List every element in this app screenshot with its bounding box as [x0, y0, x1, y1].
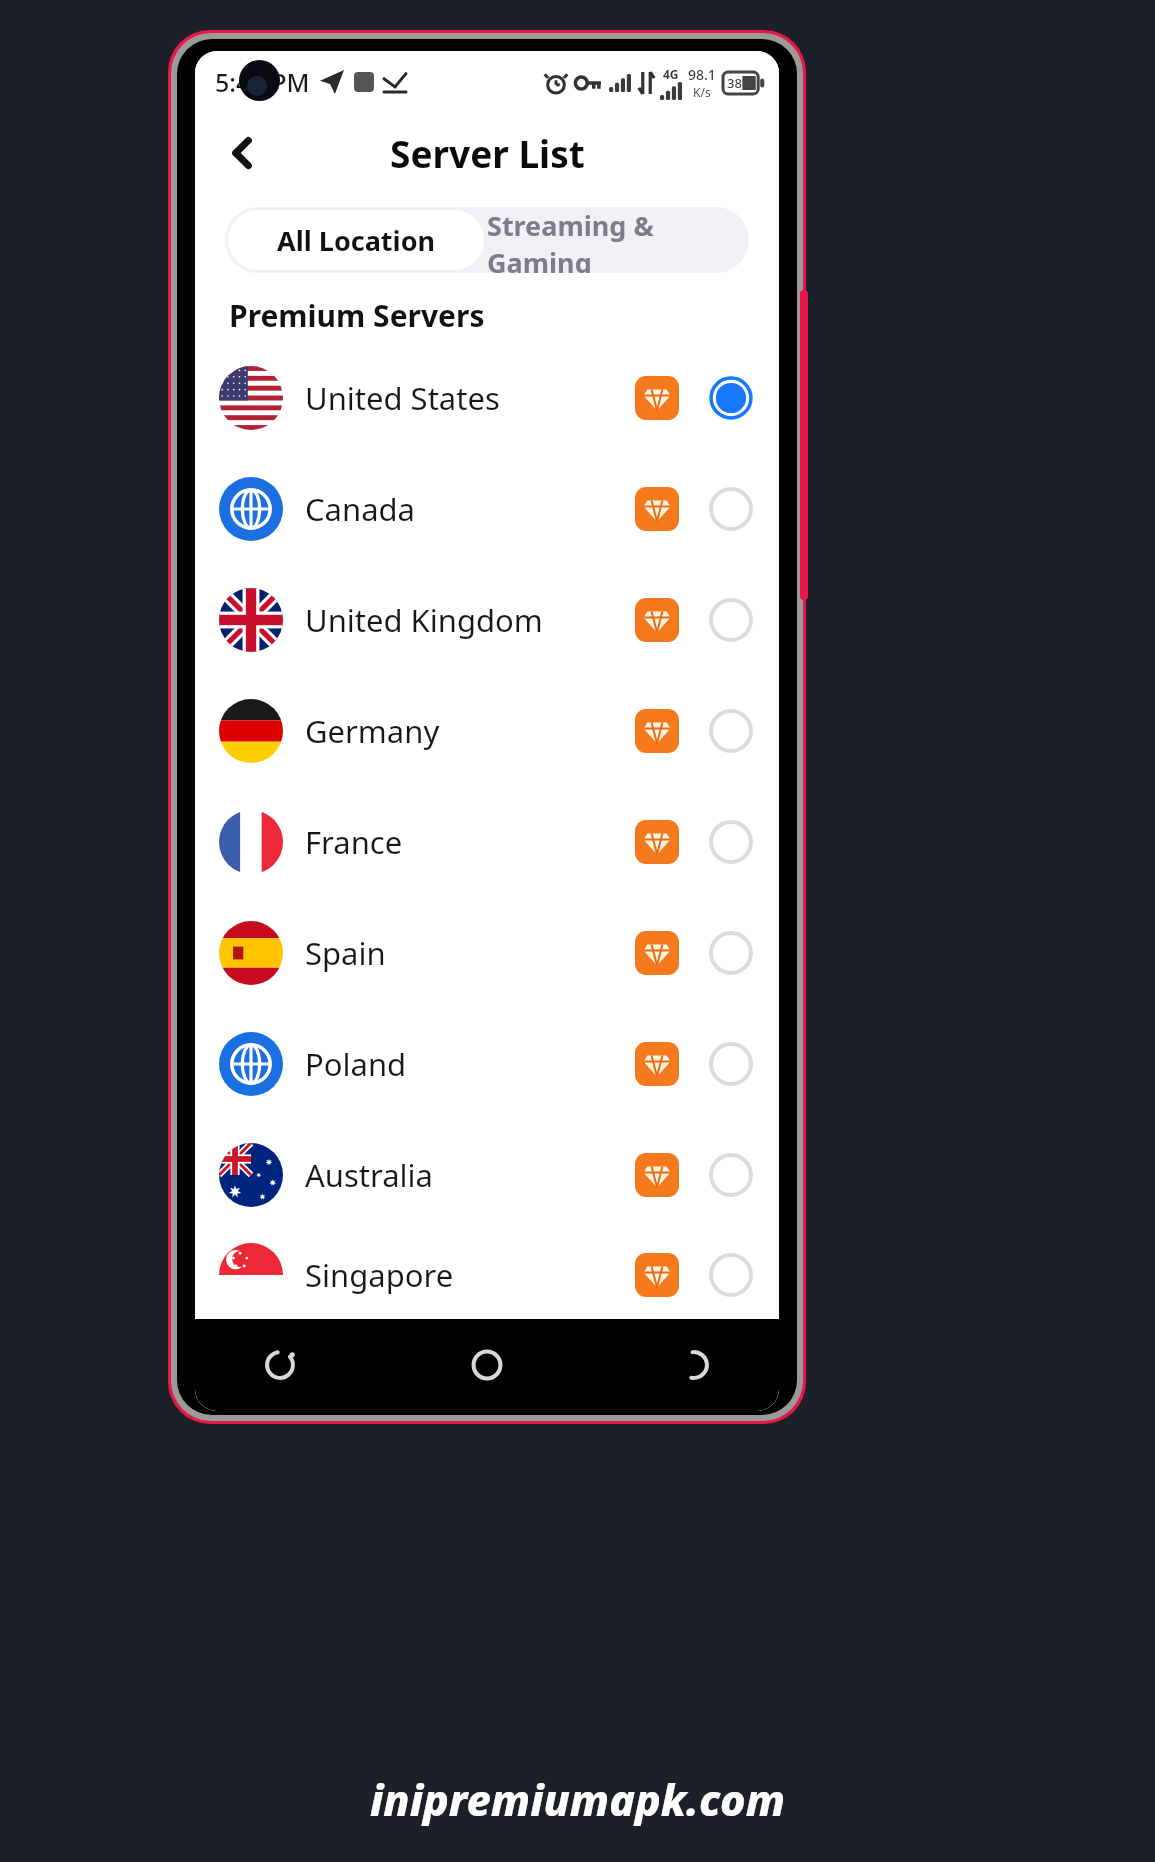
staticText: Australia	[305, 1154, 635, 1196]
button[interactable]: Australia	[195, 1119, 779, 1230]
button[interactable]: Germany	[195, 675, 779, 786]
staticText: Server List	[390, 128, 585, 178]
button[interactable]: Select United Kingdom	[709, 598, 753, 642]
button[interactable]: Poland	[195, 1008, 779, 1119]
staticText: 98.1	[688, 65, 716, 84]
button[interactable]: Select Poland	[709, 1042, 753, 1086]
button[interactable]: Select Spain	[709, 931, 753, 975]
staticText: Germany	[305, 710, 635, 752]
staticText: 38	[727, 74, 742, 92]
button[interactable]: Back	[213, 123, 273, 183]
staticText: United States	[305, 377, 635, 419]
button[interactable]: Premium	[635, 1042, 679, 1086]
staticText: All Location	[277, 222, 436, 259]
button[interactable]: Select Singapore	[709, 1253, 753, 1297]
button[interactable]: Premium	[635, 1253, 679, 1297]
button[interactable]: Recents	[251, 1336, 309, 1394]
button[interactable]: Selected	[709, 376, 753, 420]
staticText: Streaming & Gaming	[487, 207, 749, 273]
staticText: Poland	[305, 1043, 635, 1085]
button[interactable]: France	[195, 786, 779, 897]
staticText: K/s	[693, 84, 711, 100]
button[interactable]: Select Germany	[709, 709, 753, 753]
staticText: Spain	[305, 932, 635, 974]
staticText: Canada	[305, 488, 635, 530]
button[interactable]: Select Australia	[709, 1153, 753, 1197]
button[interactable]: United Kingdom	[195, 564, 779, 675]
button[interactable]: Spain	[195, 897, 779, 1008]
staticText: 4G	[663, 66, 679, 82]
staticText: Premium Servers	[229, 295, 485, 336]
button[interactable]: Select Canada	[709, 487, 753, 531]
button[interactable]: Select France	[709, 820, 753, 864]
button[interactable]: Streaming & Gaming	[487, 207, 749, 273]
staticText: inipremiumapk.com	[0, 1770, 1155, 1829]
button[interactable]: Canada	[195, 453, 779, 564]
button[interactable]: Premium	[635, 709, 679, 753]
button[interactable]: Premium	[635, 820, 679, 864]
staticText: France	[305, 821, 635, 863]
staticText: 5:47 PM	[215, 65, 310, 99]
button[interactable]: Back	[665, 1336, 723, 1394]
button[interactable]: Home	[458, 1336, 516, 1394]
button[interactable]: Premium	[635, 487, 679, 531]
button[interactable]: Premium	[635, 598, 679, 642]
button[interactable]: Premium	[635, 1153, 679, 1197]
staticText: United Kingdom	[305, 599, 635, 641]
button[interactable]: Singapore	[195, 1230, 779, 1319]
button[interactable]: United States	[195, 342, 779, 453]
button[interactable]: Premium	[635, 931, 679, 975]
button[interactable]: All Location	[228, 210, 484, 270]
staticText: Singapore	[305, 1254, 635, 1296]
button[interactable]: Premium	[635, 376, 679, 420]
